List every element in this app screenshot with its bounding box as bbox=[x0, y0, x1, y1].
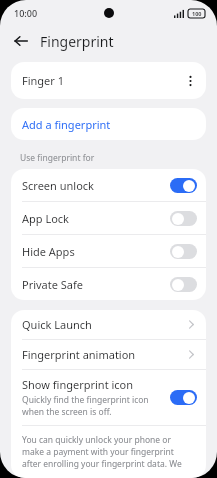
button[interactable]: Add a fingerprint bbox=[11, 108, 206, 140]
button[interactable]: Quick Launch bbox=[11, 310, 206, 339]
button[interactable]: Show fingerprint icon bbox=[11, 370, 206, 425]
staticText: Screen unlock bbox=[22, 178, 94, 193]
staticText: Private Safe bbox=[22, 277, 84, 292]
staticText: Finger 1 bbox=[22, 73, 65, 88]
staticText: 100 bbox=[192, 10, 202, 17]
staticText: 10:00 bbox=[14, 7, 38, 19]
button[interactable]: App Lock bbox=[11, 202, 206, 234]
staticText: Fingerprint animation bbox=[22, 347, 136, 362]
staticText: Quickly find the fingerprint icon when t… bbox=[22, 394, 164, 418]
staticText: Fingerprint bbox=[40, 32, 114, 51]
staticText: App Lock bbox=[22, 211, 69, 226]
staticText: Hide Apps bbox=[22, 244, 75, 259]
button[interactable]: More options bbox=[179, 70, 201, 92]
staticText: You can quickly unlock your phone or mak… bbox=[22, 434, 195, 469]
button[interactable]: Screen unlock bbox=[11, 169, 206, 201]
staticText: Use fingerprint for bbox=[20, 152, 95, 164]
staticText: Add a fingerprint bbox=[22, 117, 111, 132]
button[interactable]: Finger 1 bbox=[11, 62, 206, 99]
staticText: Quick Launch bbox=[22, 317, 92, 332]
button[interactable]: Private Safe bbox=[11, 268, 206, 300]
button[interactable]: Fingerprint animation bbox=[11, 340, 206, 369]
staticText: Show fingerprint icon bbox=[22, 377, 134, 392]
button[interactable]: Hide Apps bbox=[11, 235, 206, 267]
button[interactable]: Back bbox=[8, 28, 34, 54]
